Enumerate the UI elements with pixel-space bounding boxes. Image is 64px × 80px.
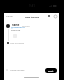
staticText: Add to thread xyxy=(10,42,25,45)
staticText: New thread xyxy=(25,15,39,18)
staticText: thread xyxy=(22,24,30,27)
button[interactable]: Anyone can reply xyxy=(6,69,25,71)
staticText: Post xyxy=(48,69,54,72)
button[interactable]: Cancel xyxy=(6,15,13,18)
staticText: 9:41 xyxy=(29,4,35,8)
staticText: name xyxy=(12,23,20,27)
button[interactable]: Post xyxy=(45,68,57,73)
staticText: selected xyxy=(11,28,21,31)
button[interactable]: Audience xyxy=(47,14,51,18)
staticText: Anyone can reply xyxy=(10,69,25,71)
button[interactable]: More options xyxy=(53,14,57,18)
staticText: @mention it xyxy=(11,25,25,28)
button[interactable]: Add to thread xyxy=(4,41,59,45)
